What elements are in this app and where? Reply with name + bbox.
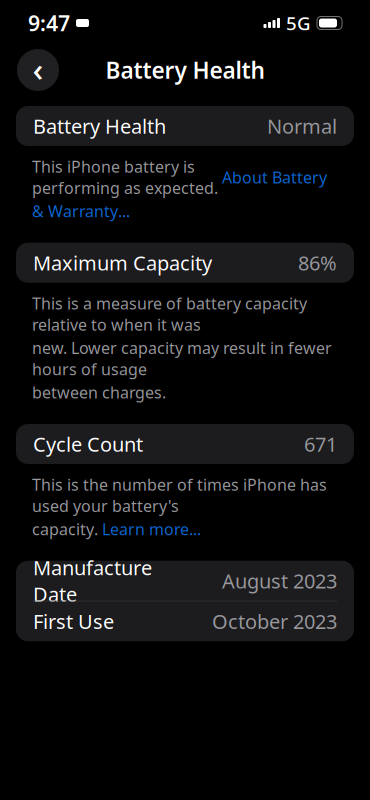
staticText: About Battery xyxy=(222,167,327,188)
staticText: August 2023 xyxy=(222,567,337,594)
staticText: Battery Health xyxy=(105,55,264,85)
staticText: 5G xyxy=(286,11,311,35)
staticText: October 2023 xyxy=(212,608,337,635)
button[interactable]: Manufacture Date xyxy=(16,561,354,601)
button[interactable]: Battery Health xyxy=(16,106,354,146)
staticText: Battery Health xyxy=(33,113,166,139)
staticText: new. Lower capacity may result in fewer … xyxy=(32,337,332,380)
staticText: 671 xyxy=(304,431,337,457)
button[interactable]: Maximum Capacity xyxy=(16,243,354,283)
staticText: & Warranty... xyxy=(32,200,130,222)
staticText: ‹ xyxy=(32,46,43,91)
staticText: This is the number of times iPhone has u… xyxy=(32,474,327,516)
button[interactable]: Back xyxy=(17,46,59,94)
button[interactable]: First Use xyxy=(16,601,354,641)
button[interactable]: Cycle Count xyxy=(16,424,354,464)
staticText: capacity. xyxy=(32,518,102,540)
staticText: Normal xyxy=(267,113,337,139)
staticText: 9:47 xyxy=(28,9,70,37)
staticText: First Use xyxy=(33,608,114,635)
staticText: This is a measure of battery capacity re… xyxy=(32,293,307,335)
staticText: 86% xyxy=(298,249,337,276)
staticText: This iPhone battery is performing as exp… xyxy=(32,156,222,198)
staticText: Cycle Count xyxy=(33,431,143,457)
staticText: between charges. xyxy=(32,382,166,403)
staticText: Learn more... xyxy=(102,518,201,540)
staticText: Maximum Capacity xyxy=(33,249,212,276)
staticText: Manufacture Date xyxy=(33,554,152,607)
